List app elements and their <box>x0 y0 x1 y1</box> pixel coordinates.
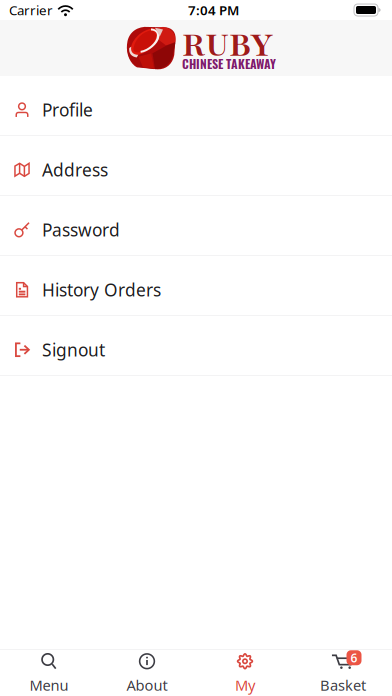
button[interactable]: Basket <box>294 645 392 696</box>
staticText: About <box>126 675 167 695</box>
staticText: CHINESE TAKEAWAY <box>182 55 276 72</box>
button[interactable]: Signout <box>0 316 392 376</box>
staticText: Basket <box>320 675 366 695</box>
button[interactable]: Menu <box>0 645 98 696</box>
staticText: 6 <box>350 650 357 666</box>
staticText: 7:04 PM <box>188 1 239 19</box>
button[interactable]: My <box>196 645 294 696</box>
staticText: Carrier <box>9 1 53 19</box>
staticText: Menu <box>29 675 68 695</box>
button[interactable]: Password <box>0 196 392 256</box>
button[interactable]: About <box>98 645 196 696</box>
staticText: History Orders <box>42 278 161 301</box>
staticText: Address <box>42 158 108 181</box>
staticText: Password <box>42 218 120 241</box>
button[interactable]: Profile <box>0 76 392 136</box>
staticText: Signout <box>42 338 105 361</box>
staticText: RUBY <box>182 23 273 67</box>
staticText: My <box>235 675 255 695</box>
staticText: Profile <box>42 98 93 121</box>
button[interactable]: Address <box>0 136 392 196</box>
button[interactable]: History Orders <box>0 256 392 316</box>
